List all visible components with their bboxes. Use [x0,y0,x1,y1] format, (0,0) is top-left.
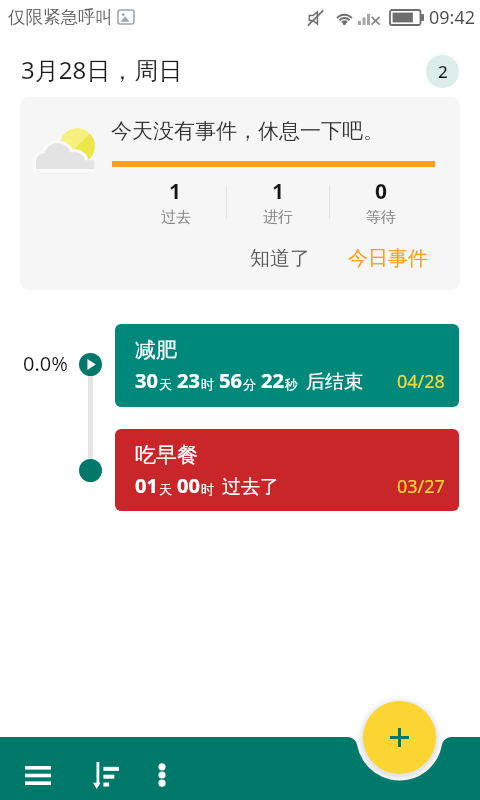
staticText: 2 [438,60,448,83]
staticText: 3月28日，周日 [21,53,183,86]
button[interactable]: 2 [426,55,459,88]
button[interactable]: Add [363,701,436,774]
button[interactable]: Sort [83,752,129,798]
staticText: 0 [375,177,388,206]
button[interactable]: 吃早餐 [115,429,459,511]
staticText: 0.0% [23,350,68,377]
staticText: 00 [177,472,200,499]
button[interactable]: 减肥 [115,324,459,407]
staticText: 23 [177,367,200,394]
staticText: 30 [135,367,158,394]
button[interactable]: More options [139,752,185,798]
staticText: 仅限紧急呼叫 [8,6,113,28]
staticText: 后结束 [306,370,363,394]
staticText: 减肥 [135,337,177,363]
staticText: 今天没有事件，休息一下吧。 [111,118,384,144]
staticText: 过去了 [222,475,279,499]
staticText: 进行 [263,208,293,227]
staticText: 1 [169,177,182,206]
staticText: 过去 [161,208,191,227]
staticText: 时 [201,481,214,497]
staticText: 等待 [366,208,396,227]
staticText: 04/28 [397,369,445,394]
staticText: 知道了 [250,246,310,271]
staticText: 分 [243,376,256,392]
staticText: 时 [201,376,214,392]
staticText: 01 [135,472,158,499]
staticText: 吃早餐 [135,442,198,468]
staticText: 09:42 [429,5,476,30]
staticText: 天 [159,376,172,392]
staticText: 今日事件 [348,246,428,271]
button[interactable]: 今日事件 [338,238,438,279]
staticText: 03/27 [397,474,445,499]
staticText: 56 [219,367,242,394]
staticText: 1 [272,177,285,206]
button[interactable]: Menu [15,752,61,798]
staticText: 天 [159,481,172,497]
button[interactable]: 知道了 [240,238,320,279]
staticText: 22 [261,367,284,394]
staticText: 秒 [285,376,298,392]
